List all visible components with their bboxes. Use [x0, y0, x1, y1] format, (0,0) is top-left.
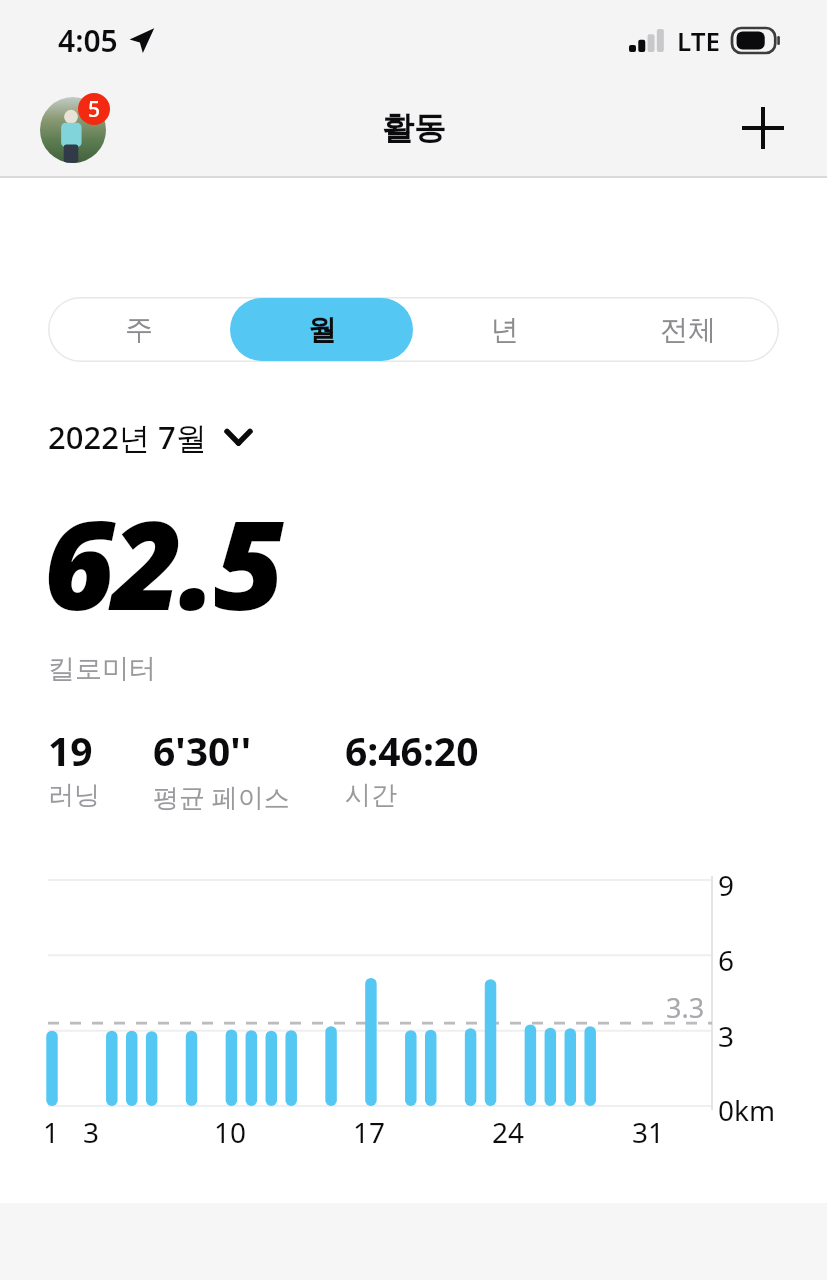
- staticText: 0km: [718, 1091, 776, 1129]
- staticText: 킬로미터: [48, 652, 156, 686]
- staticText: 9: [718, 866, 735, 904]
- staticText: 3: [718, 1017, 735, 1055]
- staticText: 전체: [660, 312, 716, 347]
- staticText: 4:05: [58, 20, 118, 61]
- staticText: 6: [718, 941, 735, 979]
- staticText: 평균 페이스: [153, 779, 290, 815]
- staticText: 주: [125, 312, 153, 347]
- button[interactable]: 2022년 7월: [48, 416, 252, 458]
- staticText: 6:46:20: [345, 724, 479, 777]
- staticText: 2022년 7월: [48, 416, 207, 458]
- staticText: 3: [83, 1113, 100, 1151]
- staticText: 활동: [382, 108, 446, 148]
- staticText: 러닝: [48, 779, 100, 812]
- button[interactable]: Profile: [40, 93, 110, 163]
- staticText: 24: [492, 1113, 525, 1151]
- staticText: 3.3: [666, 989, 705, 1026]
- staticText: 시간: [345, 779, 397, 812]
- staticText: 17: [353, 1113, 386, 1151]
- staticText: 31: [632, 1113, 665, 1151]
- staticText: 1: [43, 1113, 60, 1151]
- staticText: LTE: [677, 23, 720, 58]
- staticText: 5: [88, 95, 101, 124]
- button[interactable]: 전체: [596, 297, 779, 362]
- staticText: 19: [48, 724, 93, 777]
- staticText: 6'30'': [153, 724, 252, 777]
- button[interactable]: 년: [413, 297, 596, 362]
- staticText: 10: [214, 1113, 247, 1151]
- staticText: 년: [491, 312, 519, 347]
- staticText: 월: [308, 312, 336, 347]
- staticText: 62.5: [44, 480, 282, 646]
- button[interactable]: 월: [230, 298, 413, 361]
- button[interactable]: 주: [48, 297, 230, 362]
- button[interactable]: Add activity: [735, 100, 791, 156]
